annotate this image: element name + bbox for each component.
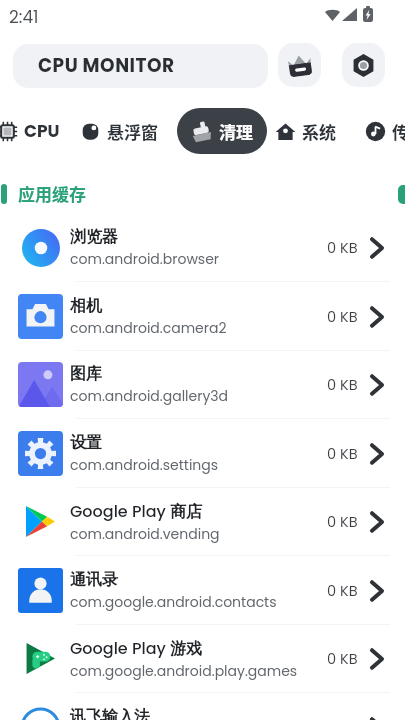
staticText: 0 KB [327, 649, 358, 669]
staticText: 浏览器 [70, 227, 118, 247]
staticText: com.google.android.contacts [70, 592, 277, 612]
staticText: 0 KB [327, 307, 358, 327]
staticText: 传 [392, 119, 405, 144]
staticText: 系统 [302, 119, 336, 144]
button[interactable]: VIP [278, 43, 321, 87]
button[interactable]: CPU [0, 108, 62, 154]
staticText: com.google.android.play.games [70, 661, 298, 681]
staticText: 2:41 [9, 5, 39, 29]
staticText: 设置 [70, 433, 102, 453]
staticText: 通讯录 [70, 570, 118, 590]
button[interactable]: Google Play 商店 [0, 487, 405, 556]
button[interactable]: CPU MONITOR [13, 44, 268, 88]
staticText: Google Play 商店 [70, 500, 202, 522]
button[interactable]: 相机 [0, 282, 405, 351]
staticText: 相机 [70, 296, 102, 316]
staticText: 0 KB [327, 238, 358, 258]
button[interactable]: 图库 [0, 350, 405, 419]
button[interactable]: 清理 [177, 108, 267, 154]
button[interactable]: 系统 [273, 108, 338, 154]
button[interactable]: 一键清理 [398, 185, 405, 204]
staticText: Google Play 游戏 [70, 637, 202, 659]
button[interactable]: Settings [342, 43, 385, 87]
staticText: 0 KB [327, 512, 358, 532]
button[interactable]: 传 [363, 108, 405, 154]
staticText: com.android.browser [70, 249, 220, 269]
staticText: com.android.gallery3d [70, 386, 229, 406]
staticText: 讯飞输入法 [70, 707, 150, 720]
staticText: 应用缓存 [18, 181, 86, 206]
staticText: com.android.settings [70, 455, 219, 475]
staticText: CPU MONITOR [38, 53, 175, 79]
staticText: 0 KB [327, 581, 358, 601]
button[interactable]: 浏览器 [0, 213, 405, 282]
staticText: 清理 [219, 119, 253, 144]
button[interactable]: Google Play 游戏 [0, 624, 405, 693]
staticText: com.android.vending [70, 524, 220, 544]
staticText: 悬浮窗 [107, 119, 158, 144]
button[interactable]: 设置 [0, 419, 405, 488]
staticText: CPU [24, 119, 60, 143]
staticText: 图库 [70, 364, 102, 384]
button[interactable]: 通讯录 [0, 556, 405, 625]
button[interactable]: 讯飞输入法 [0, 693, 405, 720]
staticText: 0 KB [327, 444, 358, 464]
button[interactable]: 悬浮窗 [78, 108, 160, 154]
staticText: com.android.camera2 [70, 318, 227, 338]
staticText: 0 KB [327, 375, 358, 395]
